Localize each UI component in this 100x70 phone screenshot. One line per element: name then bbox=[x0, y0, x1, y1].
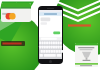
button[interactable] bbox=[68, 23, 93, 28]
button[interactable]: Home button bbox=[38, 6, 63, 64]
button[interactable] bbox=[75, 43, 98, 67]
button[interactable] bbox=[1, 3, 31, 22]
other: Home button bbox=[38, 59, 63, 64]
button[interactable] bbox=[1, 41, 25, 46]
